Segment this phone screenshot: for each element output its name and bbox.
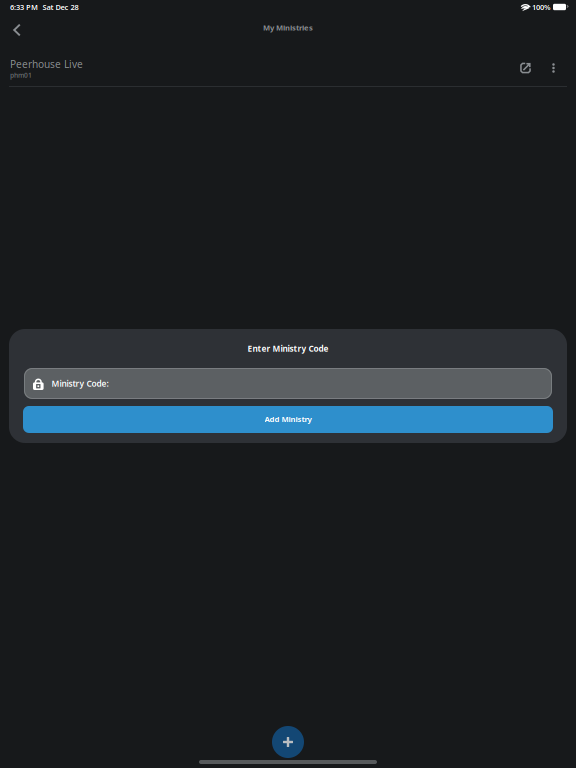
button[interactable]: Add Ministry [23, 406, 553, 433]
staticText: 6:33 PM [10, 2, 38, 12]
staticText: Sat Dec 28 [42, 2, 78, 12]
staticText: Ministry Code: [52, 378, 109, 389]
button[interactable]: Back [0, 14, 34, 44]
button[interactable]: Open Peerhouse Live [513, 44, 538, 86]
staticText: Enter Ministry Code [247, 343, 328, 354]
staticText: 100% [532, 2, 551, 12]
staticText: phm01 [10, 71, 32, 80]
staticText: My Ministries [263, 22, 313, 33]
button[interactable]: Add ministry [272, 726, 304, 758]
button[interactable]: More options [546, 44, 561, 86]
staticText: Add Ministry [264, 414, 311, 424]
staticText: Peerhouse Live [10, 57, 83, 71]
